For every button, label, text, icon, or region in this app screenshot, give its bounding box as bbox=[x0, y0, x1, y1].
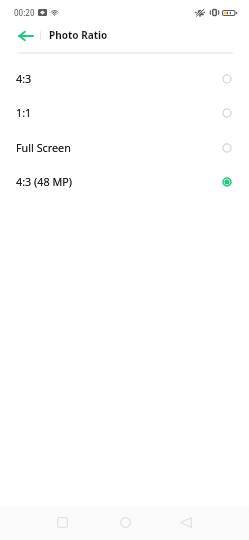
staticText: 1:1 bbox=[16, 105, 32, 120]
staticText: 00:20 bbox=[14, 7, 35, 18]
staticText: Photo Ratio bbox=[49, 28, 108, 42]
button[interactable]: 1:1 bbox=[0, 95, 249, 129]
button[interactable]: Full Screen bbox=[0, 130, 249, 164]
staticText: 4:3 (48 MP) bbox=[16, 174, 73, 189]
staticText: 4:3 bbox=[16, 71, 32, 86]
button[interactable]: Recents bbox=[42, 506, 82, 539]
staticText: 1:1 bbox=[16, 105, 32, 120]
button[interactable]: Back bbox=[9, 21, 41, 51]
staticText: 4:3 bbox=[16, 71, 32, 86]
button[interactable]: Home bbox=[105, 506, 145, 539]
button[interactable]: 4:3 (48 MP) bbox=[0, 164, 249, 198]
staticText: 4:3 (48 MP) bbox=[16, 174, 73, 189]
button[interactable]: Back bbox=[166, 506, 206, 539]
staticText: Full Screen bbox=[16, 140, 71, 155]
button[interactable]: 4:3 bbox=[0, 61, 249, 95]
staticText: Full Screen bbox=[16, 140, 71, 155]
